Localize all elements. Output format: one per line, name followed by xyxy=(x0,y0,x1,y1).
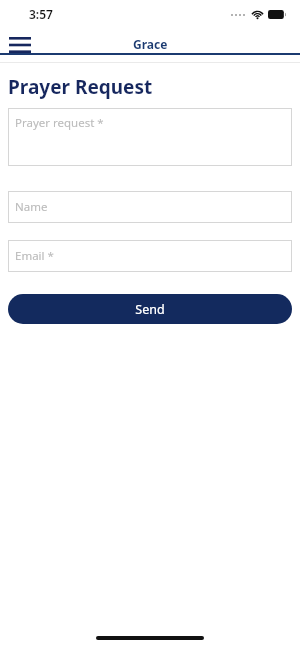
staticText: Prayer request * xyxy=(15,115,104,131)
staticText: Grace xyxy=(133,36,168,52)
button[interactable]: Email * xyxy=(8,240,292,272)
staticText: Email * xyxy=(15,248,54,264)
staticText: Send xyxy=(135,301,165,318)
button[interactable]: Menu xyxy=(7,34,33,56)
button[interactable]: Send xyxy=(8,294,292,324)
button[interactable]: Grace xyxy=(0,28,300,62)
staticText: Name xyxy=(15,199,48,215)
staticText: 3:57 xyxy=(29,6,53,22)
staticText: Prayer Request xyxy=(8,74,153,100)
button[interactable]: Prayer request * xyxy=(8,108,292,166)
button[interactable]: Name xyxy=(8,191,292,223)
